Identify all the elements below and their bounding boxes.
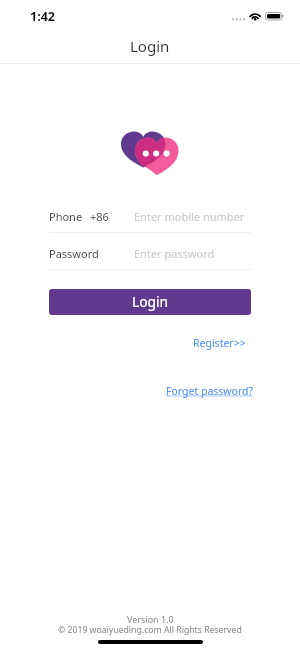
staticText: 1:42 [30, 8, 55, 25]
staticText: Password [49, 246, 99, 261]
staticText: Enter password [134, 246, 215, 261]
staticText: © 2019 woaiyueding.com All Rights Reserv… [58, 624, 242, 636]
button[interactable]: Password [49, 238, 251, 270]
staticText: +86 [90, 209, 109, 224]
staticText: Enter mobile number [134, 209, 245, 224]
staticText: Forget password? [166, 384, 254, 398]
button[interactable]: Login [49, 289, 251, 315]
button[interactable]: Forget password? [160, 378, 260, 404]
button[interactable]: Register>> [187, 330, 252, 356]
other: App logo [121, 131, 179, 176]
button[interactable]: Phone [49, 201, 251, 233]
staticText: Login [132, 292, 169, 311]
staticText: Version 1.0 [127, 613, 174, 625]
staticText: Register>> [193, 336, 246, 350]
staticText: Phone [49, 209, 83, 224]
staticText: Login [130, 36, 170, 56]
